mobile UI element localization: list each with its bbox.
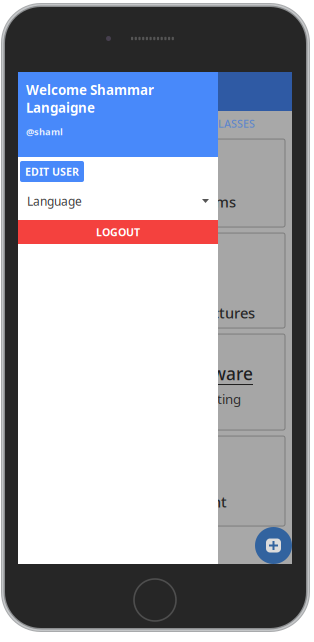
staticText: Welcome Shammar Langaigne [26, 81, 154, 116]
staticText: EDIT USER [25, 164, 79, 179]
button[interactable]: LOGOUT [18, 220, 218, 244]
staticText: Introduction to Info Systems [35, 192, 236, 211]
button[interactable]: EDIT USER [20, 161, 84, 182]
staticText: Software App Development [35, 492, 227, 511]
button[interactable]: ALL CLASSES [18, 111, 155, 136]
staticText: MY CLASSES [192, 116, 255, 131]
staticText: Intro to Systems Software [35, 362, 253, 385]
button[interactable]: MY CLASSES [155, 111, 292, 136]
staticText: ALL CLASSES [53, 116, 119, 131]
staticText: @shaml [26, 125, 63, 138]
staticText: Principles of Computer Operating [35, 390, 241, 408]
staticText: LOGOUT [96, 225, 140, 239]
staticText: Language [27, 193, 82, 209]
staticText: Introduction to Data Structures [35, 303, 255, 322]
button[interactable]: Language [18, 182, 218, 220]
button[interactable]: Add class [255, 527, 292, 564]
